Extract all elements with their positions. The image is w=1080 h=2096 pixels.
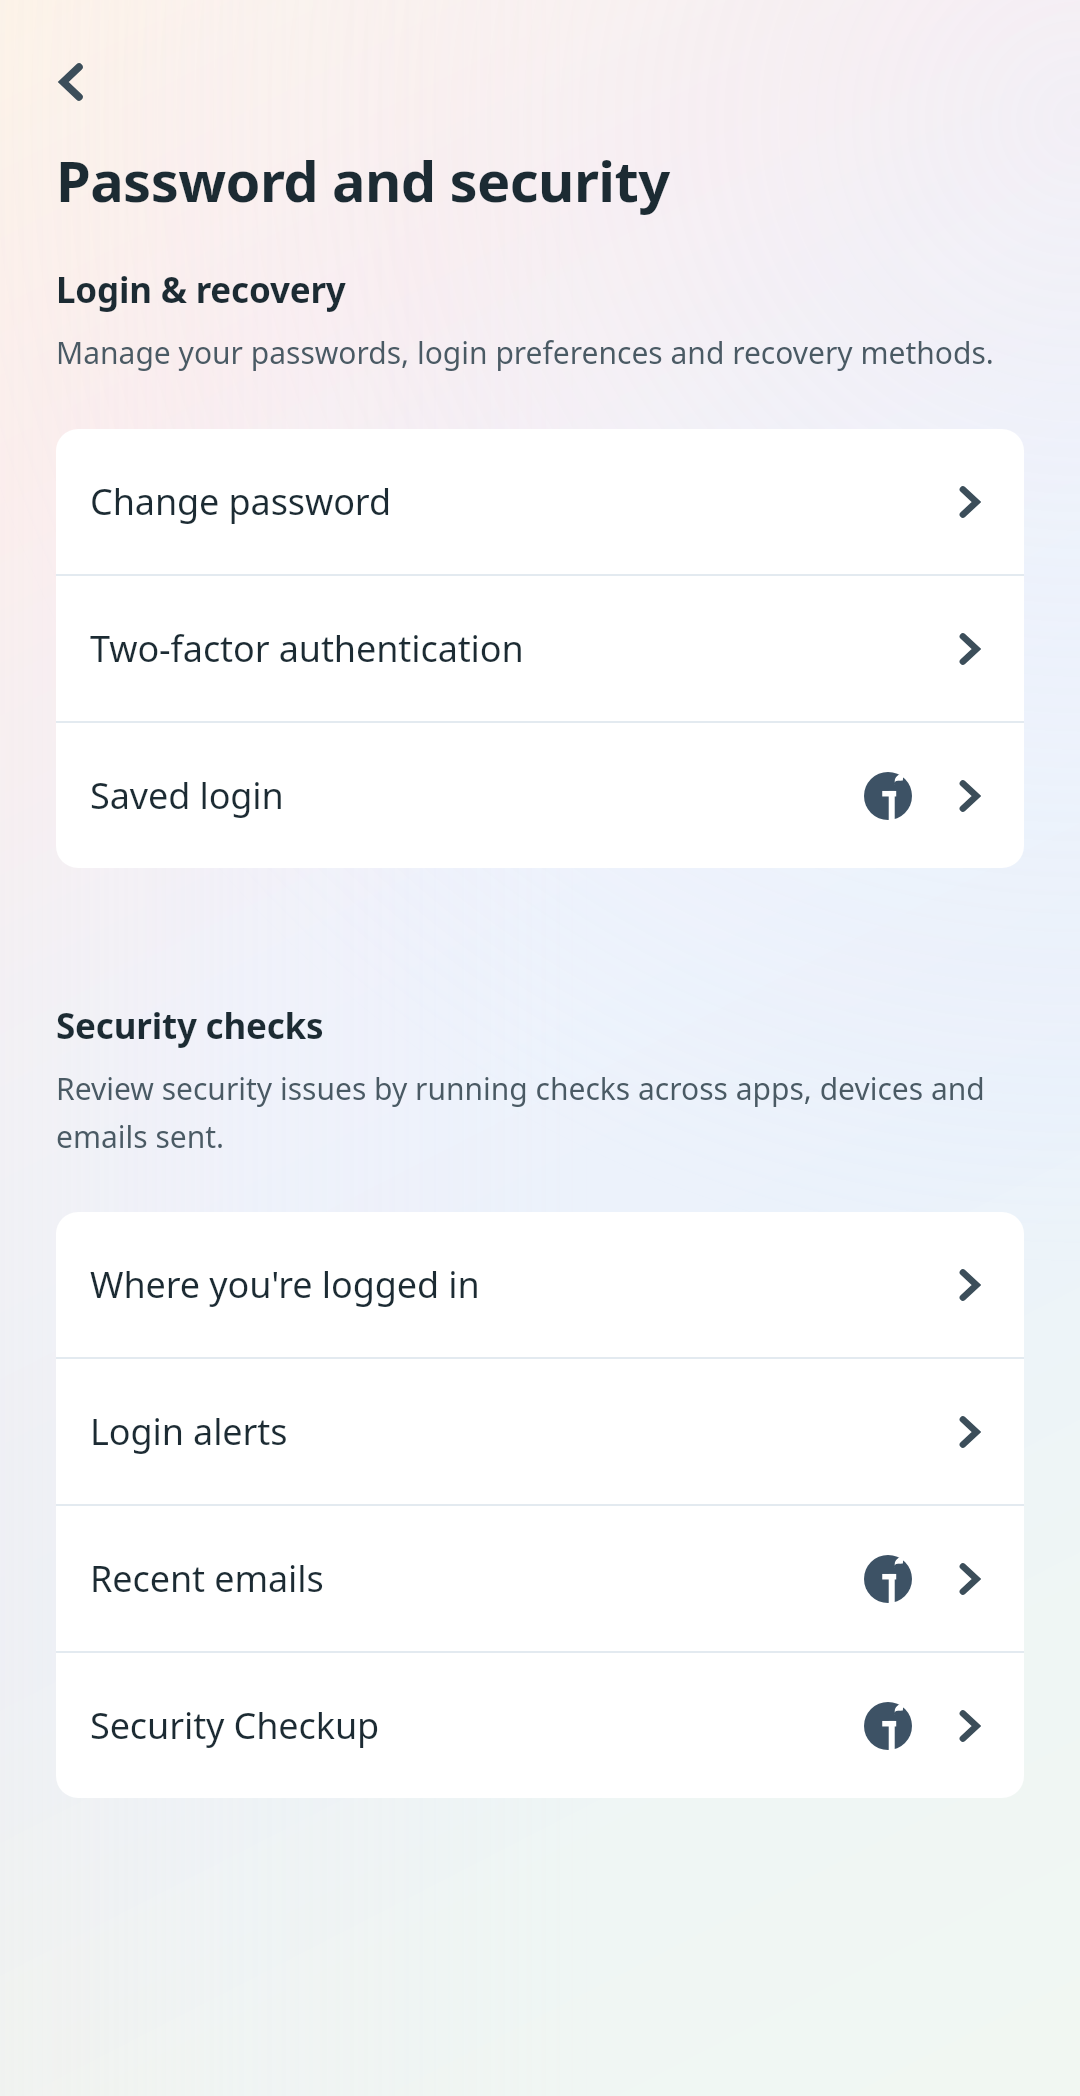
button[interactable]: Login alerts xyxy=(56,1359,1024,1504)
staticText: Manage your passwords, login preferences… xyxy=(56,332,994,373)
other: Facebook xyxy=(864,1555,912,1603)
button[interactable]: Security Checkup xyxy=(56,1653,1024,1798)
other: Facebook xyxy=(864,1702,912,1750)
staticText: Saved login xyxy=(90,771,864,820)
button[interactable]: Where you're logged in xyxy=(56,1212,1024,1357)
staticText: Change password xyxy=(90,477,942,526)
staticText: Where you're logged in xyxy=(90,1260,942,1309)
button[interactable]: Saved login xyxy=(56,723,1024,868)
other: Facebook xyxy=(864,772,912,820)
staticText: Login alerts xyxy=(90,1407,942,1456)
staticText: Security checks xyxy=(56,1002,324,1050)
staticText: Login & recovery xyxy=(56,266,346,314)
button[interactable]: Recent emails xyxy=(56,1506,1024,1651)
staticText: Recent emails xyxy=(90,1554,864,1603)
button[interactable]: Back xyxy=(26,36,118,128)
staticText: Review security issues by running checks… xyxy=(56,1068,1024,1156)
button[interactable]: Two-factor authentication xyxy=(56,576,1024,721)
staticText: Password and security xyxy=(56,142,670,218)
button[interactable]: Change password xyxy=(56,429,1024,574)
staticText: Two-factor authentication xyxy=(90,624,942,673)
staticText: Security Checkup xyxy=(90,1701,864,1750)
